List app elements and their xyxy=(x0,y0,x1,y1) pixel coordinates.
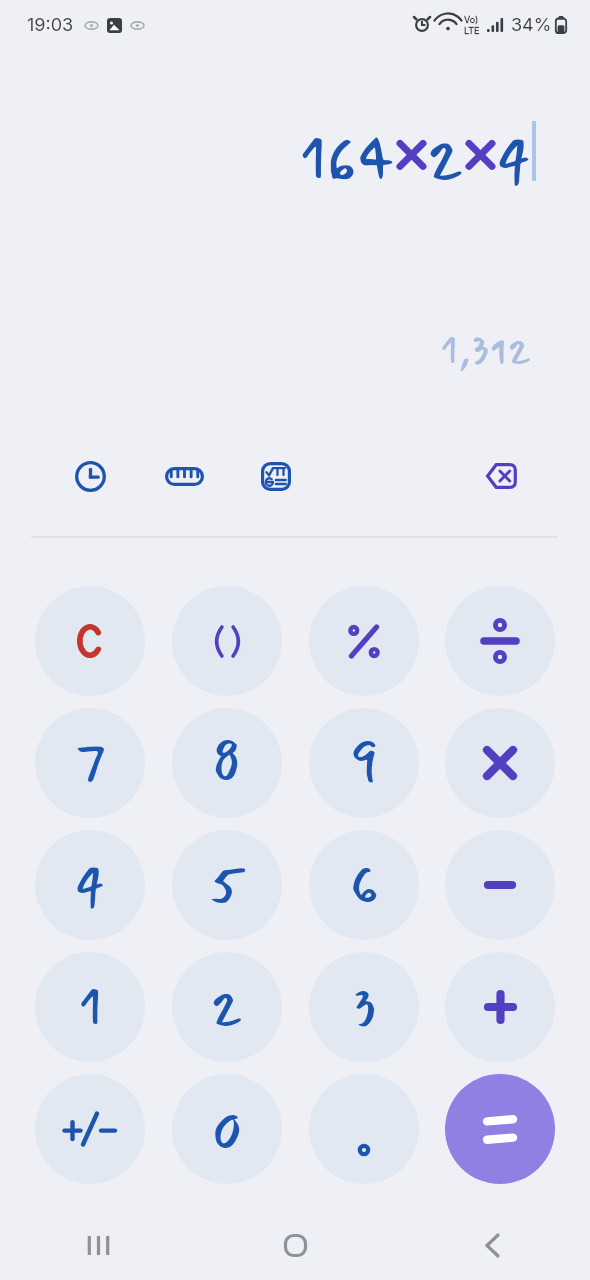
button[interactable]: 8 xyxy=(172,708,282,818)
staticText: 164 xyxy=(299,111,396,191)
button[interactable]: Recents xyxy=(68,1215,128,1275)
staticText: 6 xyxy=(350,843,379,927)
button[interactable]: 5 xyxy=(172,830,282,940)
staticText: 3 xyxy=(352,965,377,1049)
button[interactable]: 0 xyxy=(172,1074,282,1184)
staticText: 1 xyxy=(78,965,103,1049)
button[interactable]: Equals xyxy=(445,1074,555,1184)
staticText: 34% xyxy=(511,14,552,36)
button[interactable]: 9 xyxy=(309,708,419,818)
button[interactable]: 1 xyxy=(35,952,145,1062)
button[interactable]: 4 xyxy=(35,830,145,940)
staticText: 0 xyxy=(212,1087,242,1171)
staticText: 9 xyxy=(350,721,378,805)
staticText: 4 xyxy=(74,843,106,927)
staticText: 1,312 xyxy=(440,320,532,372)
button[interactable]: Plus minus xyxy=(35,1074,145,1184)
button[interactable]: Add xyxy=(445,952,555,1062)
button[interactable]: Scientific calculator xyxy=(246,446,306,506)
staticText: 5 xyxy=(208,843,246,927)
button[interactable]: Back xyxy=(462,1215,522,1275)
staticText: 2 xyxy=(210,965,244,1049)
staticText: 19:03 xyxy=(27,14,74,36)
button[interactable]: Unit converter xyxy=(154,446,214,506)
button[interactable]: 3 xyxy=(309,952,419,1062)
staticText: 2 xyxy=(427,111,465,191)
button[interactable]: 6 xyxy=(309,830,419,940)
button[interactable]: Divide xyxy=(445,586,555,696)
staticText: 7 xyxy=(74,721,107,805)
button[interactable]: Backspace xyxy=(471,446,531,506)
button[interactable]: 2 xyxy=(172,952,282,1062)
button[interactable]: Home xyxy=(265,1215,325,1275)
staticText: 4 xyxy=(496,111,532,191)
button[interactable]: Subtract xyxy=(445,830,555,940)
button[interactable]: Clear xyxy=(35,586,145,696)
button[interactable]: 7 xyxy=(35,708,145,818)
button[interactable]: Parentheses xyxy=(172,586,282,696)
staticText: 8 xyxy=(212,721,242,805)
staticText: LTE xyxy=(464,25,480,36)
button[interactable]: History xyxy=(60,446,120,506)
button[interactable]: Decimal point xyxy=(309,1074,419,1184)
button[interactable]: Multiply xyxy=(445,708,555,818)
staticText: Vo) xyxy=(464,14,479,25)
button[interactable]: Percent xyxy=(309,586,419,696)
